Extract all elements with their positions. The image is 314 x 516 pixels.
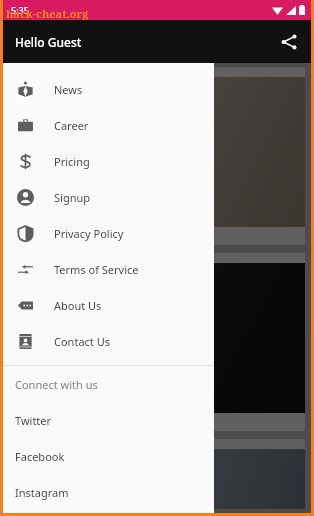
button[interactable]: Facebook (3, 438, 214, 474)
button[interactable]: Terms of Service (3, 251, 214, 287)
staticText: News (54, 82, 83, 97)
staticText: 5:35 (11, 4, 29, 16)
staticText: Twitter (15, 413, 52, 428)
staticText: About Us (54, 298, 102, 313)
button[interactable]: Privacy Policy (3, 215, 214, 251)
button[interactable]: Share (267, 20, 311, 63)
staticText: Terms of Service (54, 262, 139, 277)
button[interactable]: Twitter (3, 402, 214, 438)
button[interactable]: About Us (3, 287, 214, 323)
staticText: Hello Guest (15, 34, 82, 50)
button[interactable]: Pricing (3, 143, 214, 179)
button[interactable]: Career (3, 107, 214, 143)
button[interactable]: Instagram (3, 474, 214, 510)
staticText: hack-cheat.org (6, 6, 89, 21)
staticText: Connect with us (15, 377, 98, 392)
staticText: Career (54, 118, 89, 133)
staticText: Signup (54, 190, 91, 205)
staticText: Pricing (54, 154, 90, 169)
staticText: Facebook (15, 449, 65, 464)
button[interactable]: Contact Us (3, 323, 214, 359)
staticText: Privacy Policy (54, 226, 124, 241)
button[interactable]: Signup (3, 179, 214, 215)
staticText: Instagram (15, 485, 69, 500)
button[interactable]: News (3, 71, 214, 107)
staticText: Contact Us (54, 334, 110, 349)
